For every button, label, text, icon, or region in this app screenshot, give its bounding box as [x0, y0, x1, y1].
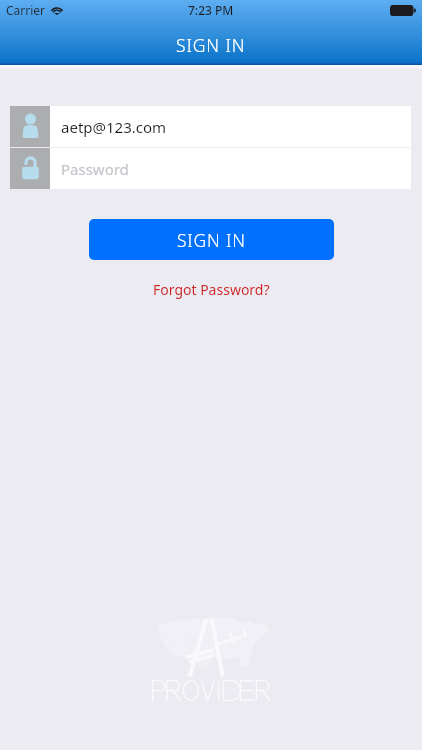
- other: Password: [10, 148, 50, 189]
- staticText: 7:23 PM: [188, 2, 234, 18]
- staticText: SIGN IN: [177, 228, 246, 252]
- button[interactable]: Password: [10, 148, 411, 189]
- staticText: SIGN IN: [176, 33, 246, 57]
- staticText: Forgot Password?: [153, 280, 270, 299]
- button[interactable]: Forgot Password?: [143, 277, 280, 302]
- staticText: aetp@123.com: [61, 117, 167, 137]
- other: Email: [10, 106, 50, 147]
- button[interactable]: Email: [10, 106, 411, 147]
- button[interactable]: SIGN IN: [89, 219, 334, 260]
- staticText: Carrier: [6, 2, 46, 18]
- staticText: Password: [61, 159, 129, 179]
